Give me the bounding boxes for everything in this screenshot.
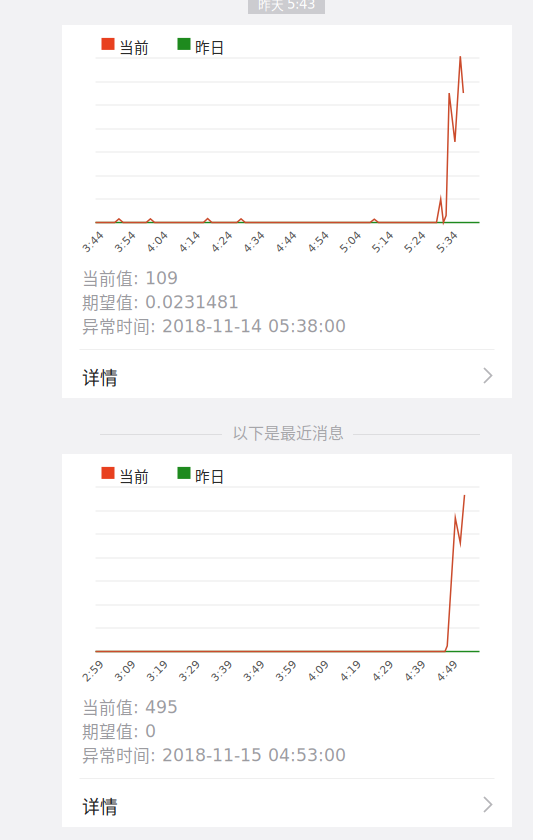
staticText: 4:04 (137, 229, 162, 241)
staticText: 2:59 (72, 658, 97, 670)
staticText: 昨日 (195, 465, 225, 486)
staticText: 4:29 (362, 658, 387, 670)
staticText: 异常时间: 2018-11-14 05:38:00 (82, 314, 346, 337)
staticText: 3:29 (169, 658, 194, 670)
staticText: 昨日 (195, 36, 225, 57)
staticText: 当前值: 495 (82, 695, 178, 718)
staticText: 以下是最近消息 (232, 420, 344, 444)
staticText: 3:09 (105, 658, 130, 670)
staticText: 5:04 (330, 229, 355, 241)
staticText: 4:44 (266, 229, 291, 241)
staticText: 4:09 (298, 658, 323, 670)
staticText: 3:49 (233, 658, 258, 670)
staticText: 5:14 (362, 229, 387, 241)
staticText: 详情 (82, 793, 118, 819)
staticText: 3:54 (105, 229, 130, 241)
staticText: 3:59 (266, 658, 291, 670)
staticText: 当前 (119, 465, 149, 486)
staticText: 4:34 (233, 229, 258, 241)
staticText: 4:24 (201, 229, 226, 241)
staticText: 3:39 (201, 658, 226, 670)
staticText: 异常时间: 2018-11-15 04:53:00 (82, 743, 346, 766)
staticText: 当前值: 109 (82, 266, 178, 289)
staticText: 昨天 5:43 (258, 0, 315, 13)
staticText: 4:19 (330, 658, 355, 670)
staticText: 4:14 (169, 229, 194, 241)
staticText: 5:34 (427, 229, 452, 241)
staticText: 4:39 (394, 658, 419, 670)
staticText: 4:54 (298, 229, 323, 241)
staticText: 3:44 (72, 229, 97, 241)
staticText: 期望值: 0.0231481 (82, 290, 239, 313)
staticText: 3:19 (137, 658, 162, 670)
staticText: 5:24 (394, 229, 419, 241)
staticText: 当前 (119, 36, 149, 57)
staticText: 4:49 (427, 658, 452, 670)
staticText: 详情 (82, 364, 118, 390)
button[interactable]: 详情 (62, 779, 512, 827)
button[interactable]: 详情 (62, 350, 512, 398)
staticText: 期望值: 0 (82, 719, 156, 742)
